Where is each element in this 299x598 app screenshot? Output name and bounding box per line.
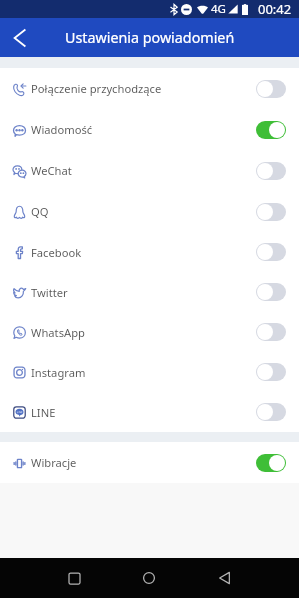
staticText: Facebook <box>31 245 82 260</box>
staticText: Wiadomość <box>31 122 93 137</box>
button[interactable]: Recents <box>54 558 94 598</box>
button[interactable]: QQ <box>0 191 299 232</box>
button[interactable]: Połączenie przychodzące <box>0 68 299 109</box>
staticText: Ustawienia powiadomień <box>65 28 235 47</box>
button[interactable]: Wibracje <box>0 442 299 483</box>
button[interactable]: WhatsApp <box>0 312 299 352</box>
staticText: 00:42 <box>258 0 292 18</box>
staticText: LINE <box>31 405 56 420</box>
staticText: QQ <box>31 204 49 219</box>
button[interactable]: WeChat <box>0 150 299 191</box>
button[interactable]: Twitter <box>0 272 299 312</box>
staticText: Instagram <box>31 365 86 380</box>
staticText: Połączenie przychodzące <box>31 81 162 96</box>
button[interactable]: Back <box>0 18 40 57</box>
staticText: WhatsApp <box>31 325 85 340</box>
staticText: Twitter <box>31 285 68 300</box>
staticText: 4G <box>211 1 226 17</box>
button[interactable]: Wiadomość <box>0 109 299 150</box>
button[interactable]: Facebook <box>0 232 299 272</box>
button[interactable]: Home <box>129 558 169 598</box>
button[interactable]: Instagram <box>0 352 299 392</box>
button[interactable]: LINE <box>0 392 299 432</box>
staticText: WeChat <box>31 163 72 178</box>
button[interactable]: Back <box>204 558 244 598</box>
staticText: Wibracje <box>31 455 77 470</box>
